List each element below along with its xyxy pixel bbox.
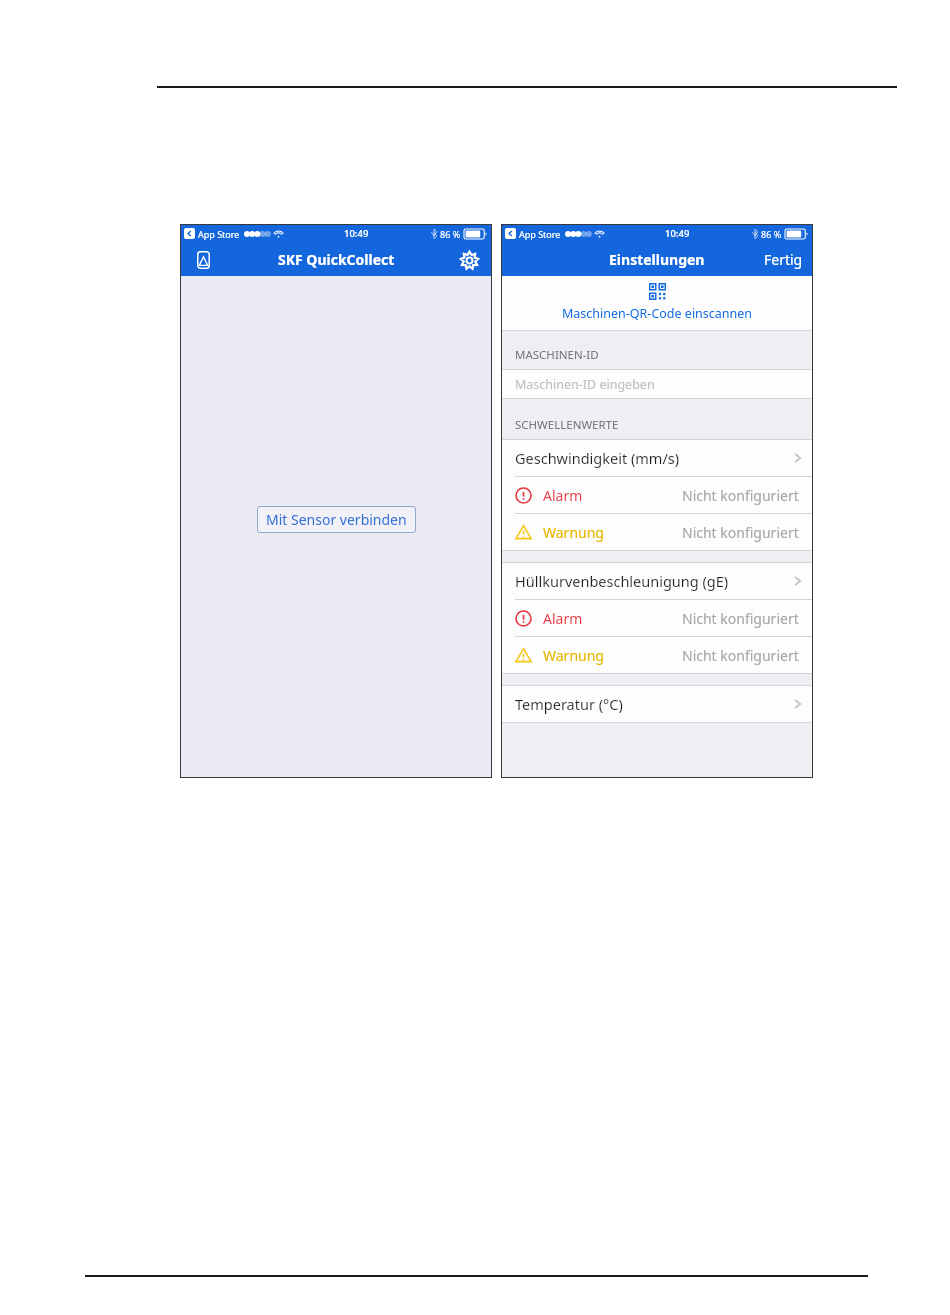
button[interactable]: Bookmarks — [188, 245, 218, 275]
staticText: Maschinen-QR-Code einscannen — [562, 305, 753, 322]
staticText: 10:49 — [665, 227, 690, 240]
staticText: SKF QuickCollect — [278, 250, 395, 269]
staticText: Nicht konfiguriert — [682, 486, 799, 505]
staticText: Alarm — [543, 609, 583, 628]
button[interactable]: Maschinen-ID eingeben — [501, 370, 813, 398]
staticText: App Store — [519, 228, 561, 240]
staticText: Geschwindigkeit (mm/s) — [515, 448, 680, 468]
button[interactable]: Temperatur (°C) — [501, 686, 813, 722]
button[interactable]: Mit Sensor verbinden — [257, 506, 416, 533]
button[interactable]: Geschwindigkeit (mm/s) — [501, 440, 813, 476]
staticText: App Store — [198, 228, 240, 240]
button[interactable]: Settings — [454, 245, 484, 275]
staticText: Maschinen-ID eingeben — [515, 376, 655, 393]
staticText: Nicht konfiguriert — [682, 523, 799, 542]
staticText: Warnung — [543, 523, 604, 542]
staticText: 86 % — [761, 228, 782, 240]
staticText: 86 % — [440, 228, 461, 240]
button[interactable]: Hüllkurvenbeschleunigung (gE) — [501, 563, 813, 599]
staticText: Nicht konfiguriert — [682, 609, 799, 628]
staticText: Fertig — [764, 250, 803, 269]
staticText: SCHWELLENWERTE — [515, 417, 619, 433]
staticText: Nicht konfiguriert — [682, 646, 799, 665]
staticText: Temperatur (°C) — [515, 694, 623, 714]
staticText: Alarm — [543, 486, 583, 505]
button[interactable]: Alarm — [501, 477, 813, 513]
staticText: Warnung — [543, 646, 604, 665]
button[interactable]: Warnung — [501, 637, 813, 673]
button[interactable]: Warnung — [501, 514, 813, 550]
button[interactable]: Maschinen-QR-Code einscannen — [501, 276, 813, 330]
staticText: Hüllkurvenbeschleunigung (gE) — [515, 571, 729, 591]
staticText: 10:49 — [344, 227, 369, 240]
staticText: Mit Sensor verbinden — [266, 510, 407, 529]
button[interactable]: Alarm — [501, 600, 813, 636]
staticText: MASCHINEN-ID — [515, 347, 599, 363]
button[interactable]: Fertig — [754, 244, 813, 275]
staticText: Einstellungen — [609, 250, 705, 269]
